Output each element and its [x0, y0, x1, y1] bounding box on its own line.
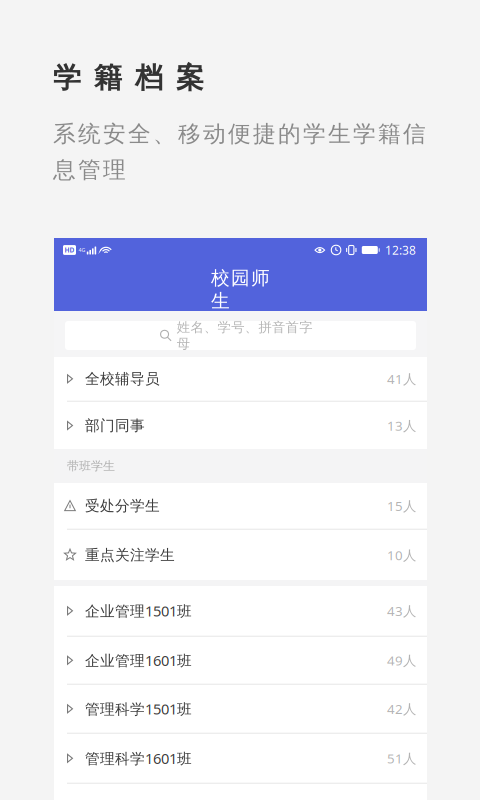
staticText: 51人 — [387, 749, 416, 767]
staticText: 系统安全、移动便捷的学生学籍信 — [53, 120, 426, 148]
button[interactable]: 重点关注学生 — [54, 530, 427, 580]
staticText: 校园师生 — [211, 267, 270, 312]
staticText: 息管理 — [53, 156, 126, 184]
button[interactable]: 管理科学1501班 — [54, 685, 427, 734]
staticText: 企业管理1601班 — [85, 651, 192, 670]
staticText: 15人 — [387, 497, 416, 515]
button[interactable]: 企业管理1601班 — [54, 637, 427, 685]
staticText: 10人 — [387, 546, 416, 564]
staticText: HD — [64, 246, 74, 254]
staticText: 4G — [78, 246, 85, 254]
staticText: 13人 — [387, 417, 416, 434]
staticText: 部门同事 — [85, 416, 145, 434]
staticText: 全校辅导员 — [85, 370, 160, 388]
staticText: 带班学生 — [67, 459, 115, 473]
staticText: 管理科学1601班 — [85, 749, 192, 768]
staticText: 49人 — [387, 651, 416, 669]
button[interactable]: 全校辅导员 — [54, 357, 427, 402]
button[interactable]: 管理科学1601班 — [54, 734, 427, 784]
staticText: 企业管理1501班 — [85, 601, 192, 621]
staticText: 重点关注学生 — [85, 546, 175, 564]
staticText: 43人 — [387, 602, 416, 620]
staticText: 学籍档案 — [53, 61, 204, 95]
staticText: 41人 — [387, 370, 416, 388]
staticText: 姓名、学号、拼音首字母 — [177, 319, 312, 352]
staticText: 管理科学1501班 — [85, 699, 192, 719]
button[interactable]: 企业管理1501班 — [54, 586, 427, 637]
button[interactable]: 部门同事 — [54, 402, 427, 449]
staticText: 受处分学生 — [85, 497, 160, 515]
staticText: 12:38 — [385, 242, 416, 258]
staticText: 42人 — [387, 700, 416, 718]
button[interactable]: 受处分学生 — [54, 483, 427, 530]
